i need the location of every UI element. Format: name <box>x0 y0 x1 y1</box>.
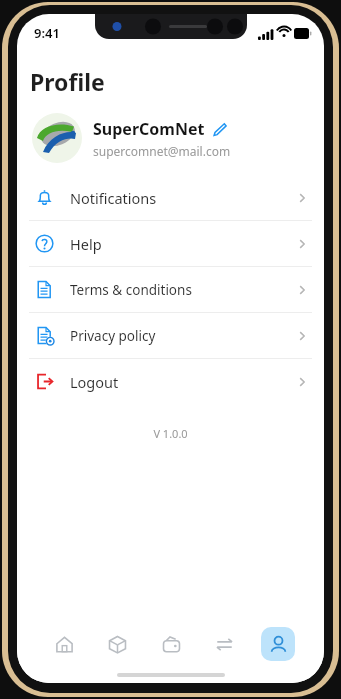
button[interactable]: Logout <box>17 359 324 404</box>
button[interactable]: Terms & conditions <box>17 267 324 312</box>
staticText: Notifications <box>70 188 157 208</box>
button[interactable]: Profile <box>261 627 295 661</box>
button[interactable]: Home <box>47 627 81 661</box>
staticText: Profile <box>30 66 105 97</box>
staticText: Terms & conditions <box>70 281 192 299</box>
staticText: 9:41 <box>34 24 60 42</box>
staticText: SuperComNet <box>93 118 205 140</box>
button[interactable]: Help <box>17 221 324 266</box>
button[interactable]: Wallet <box>154 627 188 661</box>
button[interactable]: Privacy policy <box>17 313 324 358</box>
button[interactable]: Products <box>100 627 134 661</box>
staticText: supercomnet@mail.com <box>93 143 231 159</box>
staticText: Help <box>70 234 102 254</box>
staticText: Logout <box>70 372 119 392</box>
button[interactable]: Transfers <box>207 627 241 661</box>
button[interactable]: Edit name <box>212 122 227 137</box>
staticText: Privacy policy <box>70 327 156 345</box>
staticText: V 1.0.0 <box>17 426 324 441</box>
button[interactable]: Notifications <box>17 175 324 220</box>
